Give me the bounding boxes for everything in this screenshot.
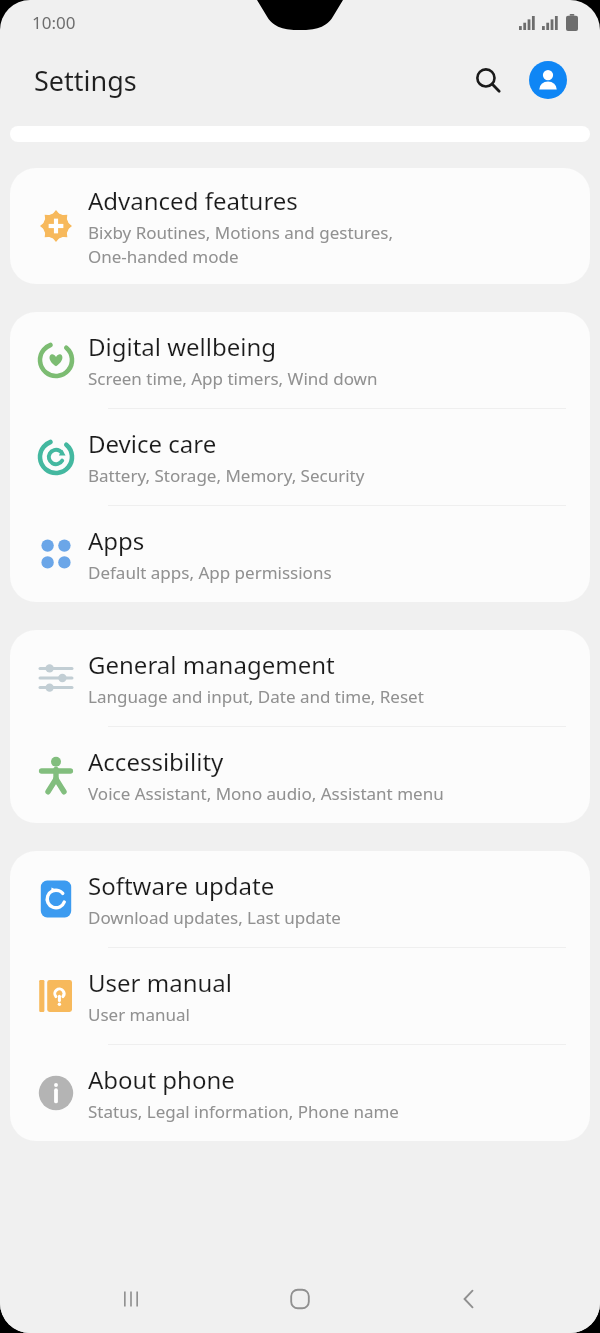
staticText: 10:00 xyxy=(32,11,76,34)
button[interactable]: Account xyxy=(524,56,572,104)
staticText: About phone xyxy=(88,1063,235,1096)
button[interactable]: Digital wellbeing xyxy=(10,312,590,408)
button[interactable]: Software update xyxy=(10,851,590,947)
staticText: Language and input, Date and time, Reset xyxy=(88,685,424,708)
staticText: Advanced features xyxy=(88,184,298,217)
staticText: Accessibility xyxy=(88,745,224,778)
button[interactable]: Home xyxy=(262,1269,338,1329)
button[interactable]: About phone xyxy=(10,1045,590,1141)
staticText: Download updates, Last update xyxy=(88,906,341,929)
button[interactable]: General management xyxy=(10,630,590,726)
button[interactable]: Apps xyxy=(10,506,590,602)
staticText: Digital wellbeing xyxy=(88,330,277,363)
staticText: Battery, Storage, Memory, Security xyxy=(88,464,365,487)
staticText: Apps xyxy=(88,524,145,557)
staticText: Default apps, App permissions xyxy=(88,561,332,584)
staticText: Voice Assistant, Mono audio, Assistant m… xyxy=(88,782,444,805)
staticText: Screen time, App timers, Wind down xyxy=(88,367,378,390)
button[interactable]: Recents xyxy=(93,1269,169,1329)
button[interactable]: Accessibility xyxy=(10,727,590,823)
staticText: Bixby Routines, Motions and gestures, On… xyxy=(88,221,394,268)
staticText: User manual xyxy=(88,1003,190,1026)
button[interactable]: Search xyxy=(464,56,512,104)
button[interactable]: Device care xyxy=(10,409,590,505)
staticText: User manual xyxy=(88,966,232,999)
staticText: Settings xyxy=(34,62,137,99)
staticText: General management xyxy=(88,648,335,681)
button[interactable]: Back xyxy=(431,1269,507,1329)
staticText: Software update xyxy=(88,869,275,902)
staticText: Device care xyxy=(88,427,217,460)
button[interactable]: Advanced features xyxy=(10,168,590,284)
button[interactable]: User manual xyxy=(10,948,590,1044)
staticText: Status, Legal information, Phone name xyxy=(88,1100,399,1123)
